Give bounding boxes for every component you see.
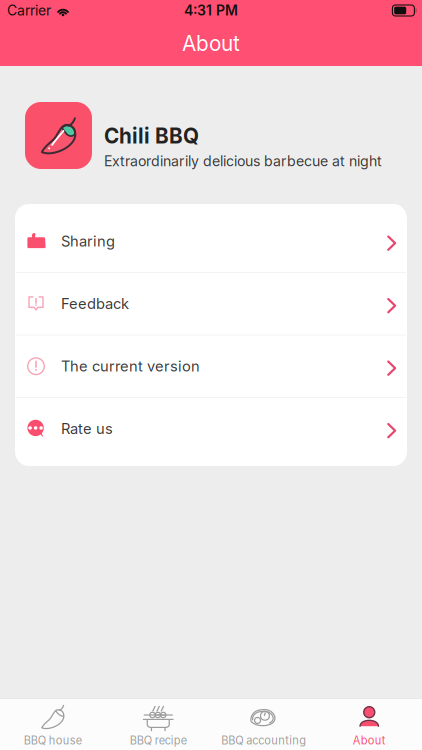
staticText: Rate us: [61, 420, 113, 438]
staticText: The current version: [61, 357, 200, 375]
staticText: BBQ house: [24, 734, 82, 747]
button[interactable]: Rate us: [15, 398, 407, 459]
staticText: Sharing: [61, 232, 115, 250]
staticText: Extraordinarily delicious barbecue at ni…: [104, 152, 382, 170]
button[interactable]: Sharing: [15, 210, 407, 272]
button[interactable]: Feedback: [15, 273, 407, 334]
staticText: BBQ accounting: [221, 734, 306, 747]
button[interactable]: BBQ accounting: [211, 699, 316, 750]
staticText: BBQ recipe: [130, 734, 187, 747]
button[interactable]: BBQ house: [0, 699, 105, 750]
button[interactable]: The current version: [15, 335, 407, 397]
button[interactable]: About: [316, 699, 422, 750]
staticText: About: [182, 31, 240, 56]
staticText: Chili BBQ: [104, 123, 199, 148]
staticText: Carrier: [7, 2, 51, 19]
staticText: About: [353, 734, 386, 747]
button[interactable]: BBQ recipe: [105, 699, 211, 750]
staticText: Feedback: [61, 295, 129, 313]
staticText: 4:31 PM: [184, 2, 238, 19]
